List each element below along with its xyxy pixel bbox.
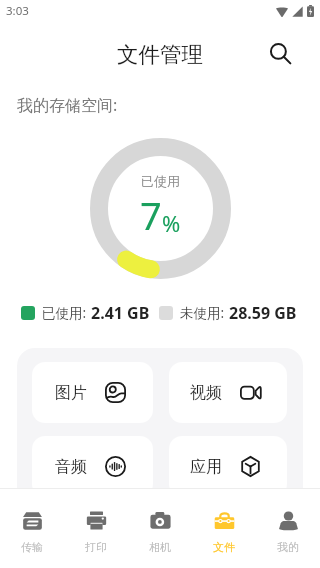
button[interactable]: 传输 [0,489,64,554]
button[interactable]: Search [266,39,295,68]
button[interactable]: 应用 [169,436,287,497]
staticText: 已使用 [141,173,180,189]
staticText: 我的存储空间: [17,94,118,116]
staticText: 我的 [277,540,299,554]
button[interactable]: 文件 [192,489,256,554]
button[interactable]: 视频 [169,362,287,423]
button[interactable]: 我的 [256,489,320,554]
staticText: 传输 [21,540,43,554]
staticText: 文件管理 [117,41,203,68]
staticText: 7 [140,189,162,241]
button[interactable]: 音频 [32,436,153,497]
staticText: % [162,208,181,238]
staticText: 未使用: [180,304,225,322]
staticText: 音频 [55,457,87,477]
staticText: 28.59 GB [229,302,297,324]
staticText: 2.41 GB [91,302,150,324]
button[interactable]: 图片 [32,362,153,423]
button[interactable]: 打印 [64,489,128,554]
staticText: 视频 [190,383,222,403]
staticText: 打印 [85,540,107,554]
staticText: 相机 [149,540,171,554]
staticText: 图片 [55,383,87,403]
staticText: 应用 [190,457,222,477]
staticText: 已使用: [42,304,87,322]
staticText: 3:03 [6,3,29,19]
staticText: 文件 [213,540,235,554]
button[interactable]: 相机 [128,489,192,554]
